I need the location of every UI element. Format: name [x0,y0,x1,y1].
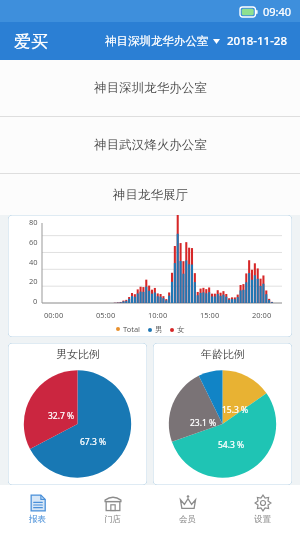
staticText: 05:00 [96,310,116,320]
staticText: 20 [29,276,38,286]
button[interactable]: 男女比例 [8,343,147,485]
button[interactable]: 神目深圳龙华办公室 [0,60,300,116]
staticText: 32.7 % [48,410,75,422]
staticText: 20:00 [252,310,272,320]
staticText: 09:40 [263,4,292,19]
staticText: 80 [29,217,38,227]
button[interactable]: 年龄比例 [153,343,292,485]
staticText: 54.3 % [218,439,245,451]
button[interactable]: 80 [8,215,292,337]
button[interactable]: 报表 [0,485,75,533]
staticText: 门店 [104,514,121,525]
staticText: 60 [29,237,38,247]
button[interactable]: 设置 [225,485,300,533]
staticText: 0 [33,296,38,306]
staticText: 23.1 % [190,417,217,429]
staticText: 设置 [254,514,271,525]
button[interactable]: 会员 [150,485,225,533]
staticText: 神目深圳龙华办公室 [94,80,207,96]
button[interactable]: 神目深圳龙华办公室 [101,30,224,52]
staticText: 神目武汉烽火办公室 [94,137,207,153]
staticText: 男女比例 [56,347,100,361]
staticText: 会员 [179,514,196,525]
staticText: 15:00 [200,310,220,320]
staticText: 神目龙华展厅 [113,187,188,203]
staticText: Total [123,324,141,334]
staticText: 年龄比例 [201,347,245,361]
button[interactable]: 神目武汉烽火办公室 [0,117,300,173]
button[interactable]: 爱买 [14,31,48,52]
staticText: 10:00 [148,310,168,320]
staticText: 报表 [29,514,46,525]
button[interactable]: 门店 [75,485,150,533]
staticText: 15.3 % [222,404,249,416]
staticText: 40 [29,257,38,267]
button[interactable]: 神目龙华展厅 [0,174,300,215]
staticText: 女 [177,325,185,334]
button[interactable]: 2018-11-28 [227,33,288,49]
staticText: 00:00 [44,310,64,320]
staticText: 67.3 % [80,436,107,448]
staticText: 神目深圳龙华办公室 [105,34,209,48]
staticText: 男 [155,325,163,334]
